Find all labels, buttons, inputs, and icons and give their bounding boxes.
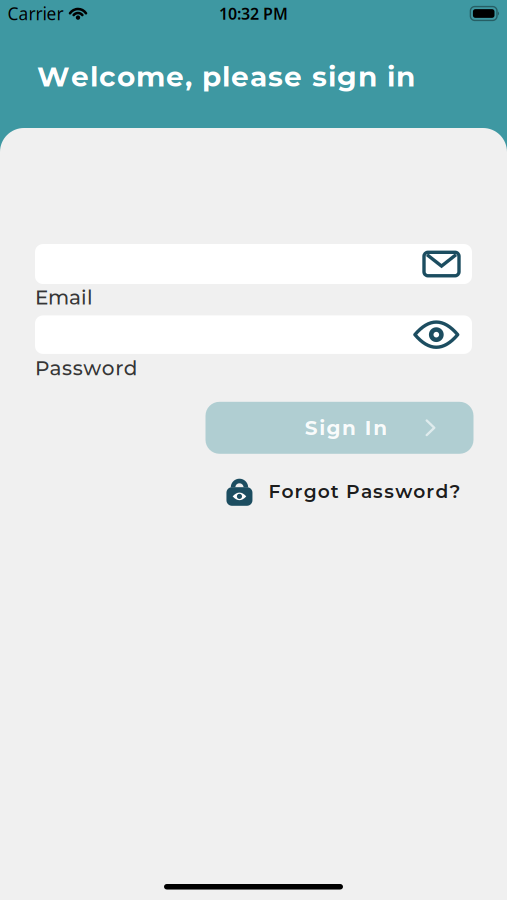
staticText: P	[35, 356, 49, 380]
staticText: s	[373, 480, 383, 503]
staticText: l	[222, 59, 230, 93]
staticText: w	[83, 356, 101, 380]
button[interactable]: F	[226, 477, 460, 506]
staticText: r	[426, 480, 434, 503]
button[interactable]: Show password	[413, 322, 472, 348]
staticText: o	[117, 59, 135, 93]
staticText: e	[231, 59, 249, 93]
staticText: ,	[185, 59, 192, 93]
staticText: ?	[449, 480, 460, 503]
staticText: p	[202, 59, 221, 93]
staticText: o	[102, 356, 115, 380]
staticText: P	[346, 480, 360, 503]
staticText: w	[395, 480, 412, 503]
staticText: s	[73, 356, 83, 380]
staticText: e	[166, 59, 184, 93]
staticText: i	[328, 59, 336, 93]
staticText: d	[124, 356, 138, 380]
staticText: i	[319, 416, 325, 440]
staticText: F	[268, 480, 280, 503]
staticText: n	[373, 416, 387, 440]
staticText: 10:32 PM	[219, 3, 288, 24]
staticText: n	[342, 416, 356, 440]
staticText: o	[318, 480, 330, 503]
staticText: t	[331, 480, 339, 503]
staticText: e	[71, 59, 89, 93]
staticText: g	[304, 480, 317, 503]
staticText: r	[295, 480, 303, 503]
staticText: S	[305, 416, 318, 440]
staticText: n	[358, 59, 377, 93]
staticText: d	[435, 480, 448, 503]
staticText: c	[99, 59, 116, 93]
staticText: o	[281, 480, 293, 503]
button[interactable]: S	[205, 402, 473, 454]
staticText: I	[365, 416, 372, 440]
staticText: s	[268, 59, 283, 93]
staticText: m	[136, 59, 165, 93]
staticText: W	[37, 59, 70, 93]
staticText: l	[90, 59, 98, 93]
staticText: g	[337, 59, 357, 93]
staticText: s	[384, 480, 394, 503]
staticText: i	[387, 59, 395, 93]
staticText: g	[327, 416, 341, 440]
staticText: a	[49, 356, 61, 380]
staticText: e	[284, 59, 302, 93]
staticText: o	[413, 480, 425, 503]
staticText: s	[312, 59, 327, 93]
staticText: a	[361, 480, 372, 503]
staticText: a	[250, 59, 267, 93]
staticText: Carrier	[7, 2, 63, 25]
staticText: Email	[35, 285, 93, 309]
staticText: r	[115, 356, 123, 380]
staticText: n	[396, 59, 415, 93]
staticText: s	[62, 356, 72, 380]
